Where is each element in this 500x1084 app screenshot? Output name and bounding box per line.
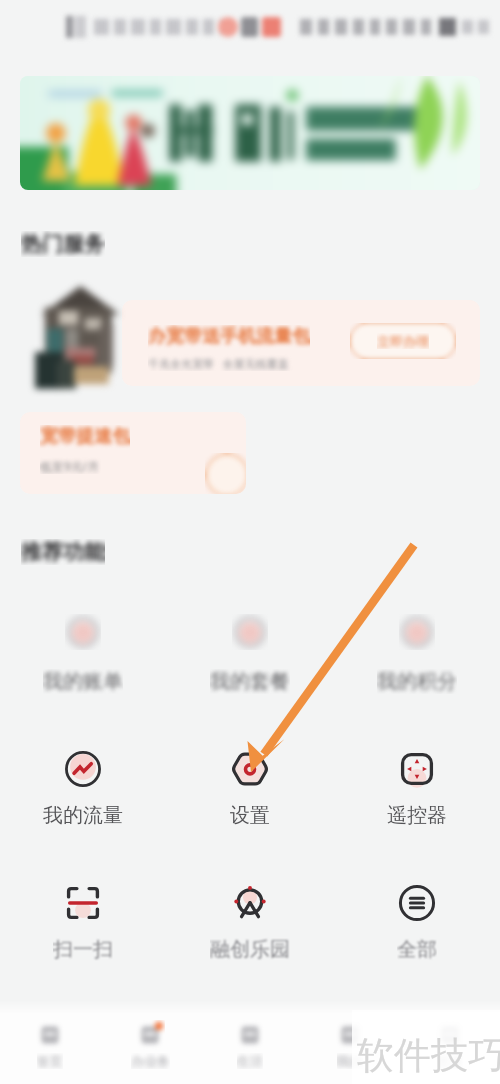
button[interactable] (190, 604, 310, 682)
staticText: 我的流量 (43, 803, 123, 828)
button[interactable]: 办业务 (100, 1014, 200, 1084)
button[interactable]: 融创乐园 (190, 875, 310, 953)
staticText: 首页 (37, 1053, 63, 1069)
button[interactable] (20, 76, 480, 190)
button[interactable]: 立即办理 (350, 323, 456, 359)
staticText: 我的积分 (377, 669, 457, 694)
staticText: 办宽带送手机流量包 (148, 325, 310, 348)
button[interactable]: 设置 (190, 741, 310, 819)
button[interactable] (357, 604, 477, 682)
button[interactable]: 我的流量 (23, 741, 143, 819)
staticText: 热门服务 (21, 231, 105, 257)
button[interactable]: 办宽带送手机流量包 (122, 300, 480, 386)
staticText: 更多 (437, 1053, 463, 1069)
staticText: 千兆全光宽带 全屋无线覆盖 (148, 356, 289, 371)
staticText: 融创乐园 (210, 937, 290, 962)
button[interactable] (23, 604, 143, 682)
other: 我的流量 (65, 751, 101, 787)
other: 全部 (399, 885, 435, 921)
staticText: 遥控器 (387, 803, 447, 828)
staticText: 全部 (397, 937, 437, 962)
staticText: 软件技巧 (357, 1032, 500, 1079)
staticText: 扫一扫 (53, 937, 113, 962)
button[interactable]: 我的 (300, 1014, 400, 1084)
staticText: 宽带提速包 (40, 425, 130, 448)
staticText: 我的 (337, 1053, 363, 1069)
button[interactable]: 宽带提速包 (20, 412, 246, 494)
other: 设置 (232, 751, 268, 787)
button[interactable]: 全部 (357, 875, 477, 953)
other: 融创乐园 (232, 885, 268, 921)
staticText: 我的套餐 (210, 669, 290, 694)
staticText: 办业务 (131, 1053, 170, 1069)
button[interactable]: 扫一扫 (23, 875, 143, 953)
staticText: 设置 (230, 803, 270, 828)
staticText: 低至9元/月 (40, 458, 100, 474)
staticText: 立即办理 (377, 333, 429, 349)
other: 遥控器 (399, 751, 435, 787)
button[interactable]: 首页 (0, 1014, 100, 1084)
button[interactable]: 遥控器 (357, 741, 477, 819)
staticText: 生活 (237, 1053, 263, 1069)
button[interactable]: 更多 (400, 1014, 500, 1084)
staticText: 我的账单 (43, 669, 123, 694)
button[interactable]: 生活 (200, 1014, 300, 1084)
staticText: 推荐功能 (21, 539, 105, 565)
other: 扫一扫 (65, 885, 101, 921)
